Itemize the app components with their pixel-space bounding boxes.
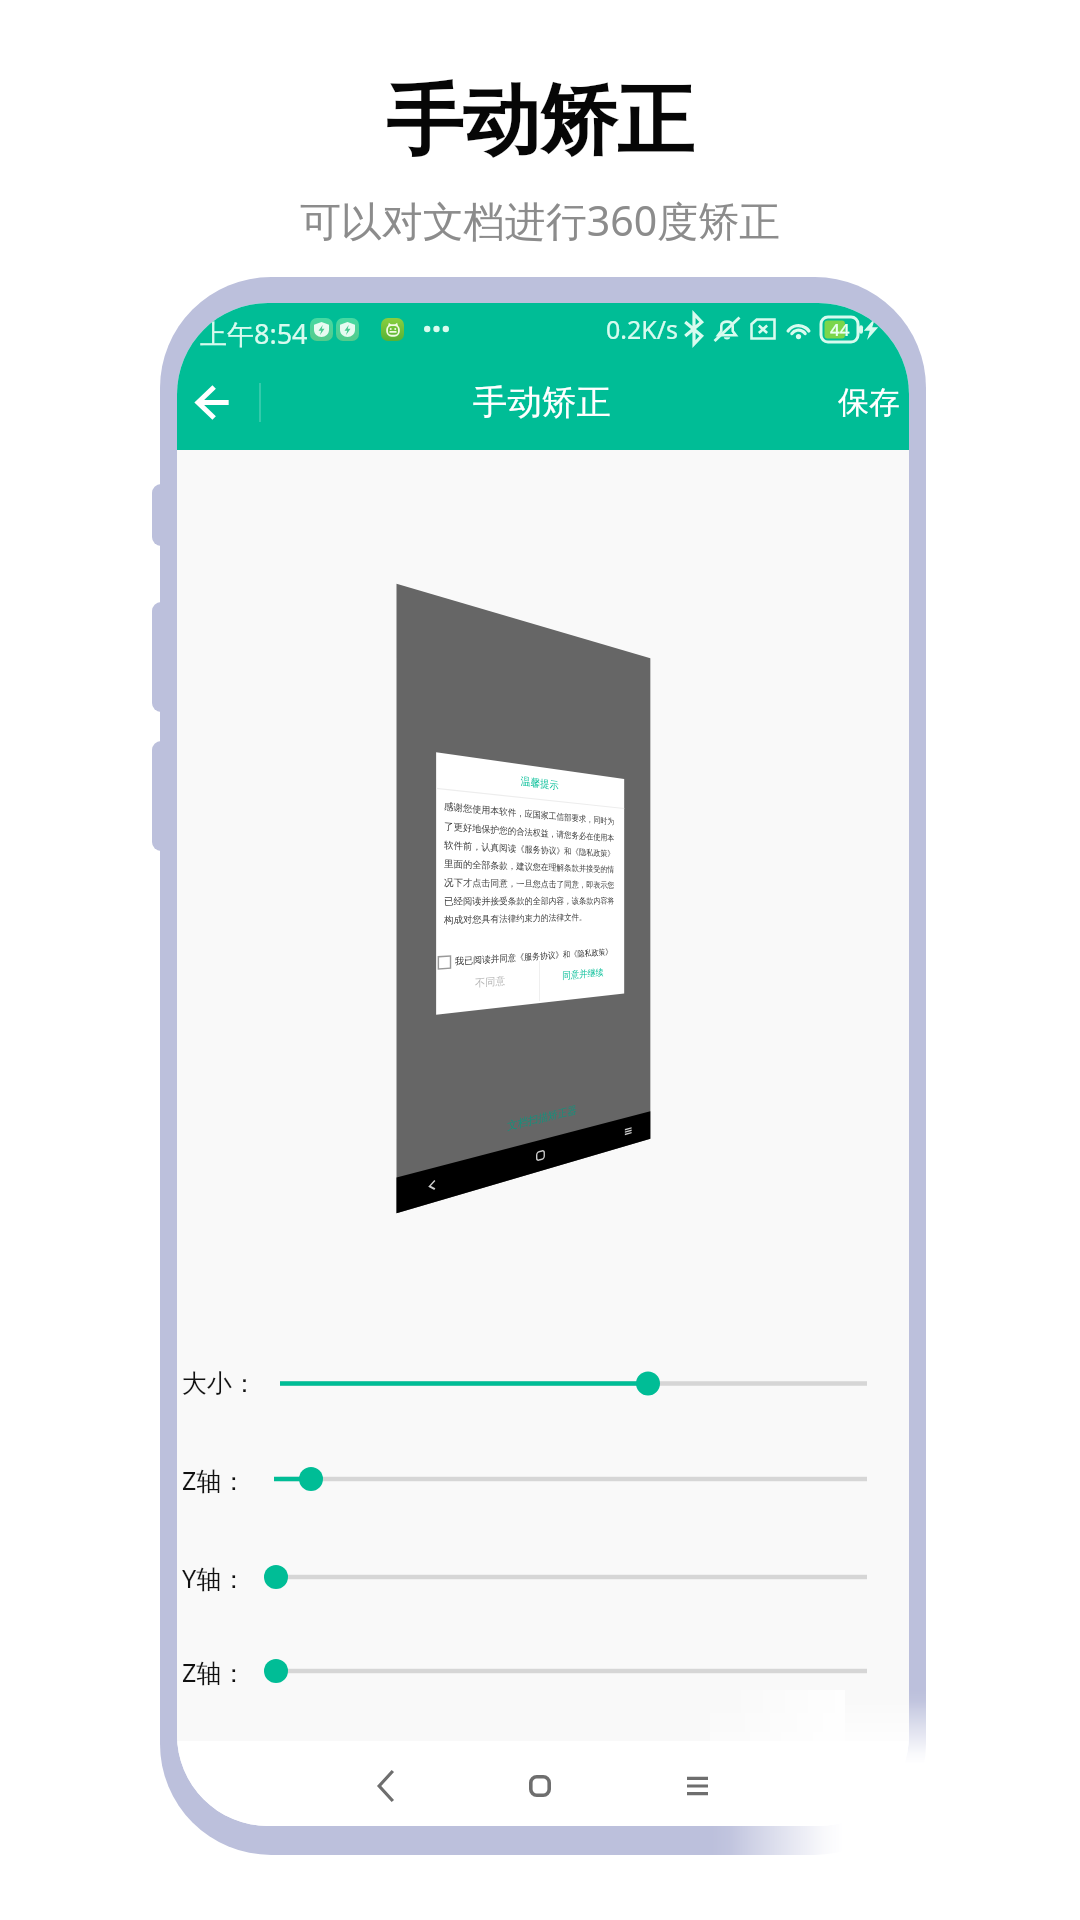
staticText: 手动矫正	[0, 73, 1080, 170]
staticText: 同意并继续	[562, 966, 603, 982]
button[interactable]: Back	[177, 358, 256, 446]
staticText: 可以对文档进行360度矫正	[0, 192, 1080, 248]
button[interactable]: Y轴：	[182, 1544, 882, 1610]
button[interactable]: 大小：	[182, 1351, 882, 1417]
staticText: 大小：	[182, 1368, 257, 1399]
staticText: 0.2K/s	[606, 312, 679, 346]
button[interactable]: 保存	[822, 370, 909, 434]
staticText: Y轴：	[182, 1561, 247, 1595]
staticText: 保存	[838, 383, 900, 422]
staticText: 上午8:54	[200, 315, 308, 352]
button[interactable]: Z轴：	[182, 1638, 882, 1704]
button[interactable]: Z轴：	[182, 1446, 882, 1512]
staticText: 感谢您使用本软件，应国家工信部要求，同时为了更好地保护您的合法权益，请您务必在使…	[444, 801, 619, 926]
staticText: 手动矫正	[473, 381, 611, 424]
staticText: Z轴：	[182, 1463, 247, 1497]
staticText: 文档扫描矫正器	[507, 1103, 577, 1133]
button[interactable]: Back	[344, 1744, 428, 1826]
staticText: 44	[830, 318, 850, 341]
button[interactable]: Home	[498, 1744, 582, 1826]
button[interactable]: Recents	[655, 1744, 739, 1826]
staticText: 温馨提示	[521, 774, 559, 792]
staticText: 我已阅读并同意《服务协议》和《隐私政策》	[455, 947, 612, 968]
staticText: Z轴：	[182, 1655, 247, 1689]
staticText: 不同意	[475, 974, 505, 990]
